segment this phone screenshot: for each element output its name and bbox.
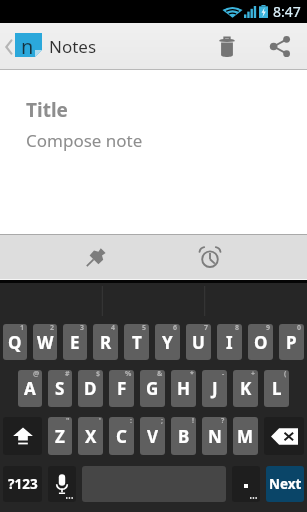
button[interactable]: H [171, 370, 196, 407]
button[interactable]: Y [155, 324, 180, 360]
staticText: O [254, 331, 268, 354]
staticText: * [190, 370, 194, 379]
staticText: X [85, 425, 97, 448]
staticText: $ [96, 370, 101, 379]
staticText: N [208, 425, 222, 448]
button[interactable]: U [186, 324, 211, 360]
button[interactable]: Next [266, 466, 304, 502]
staticText: Next [269, 475, 302, 493]
button[interactable]: L [264, 370, 289, 407]
staticText: 3 [80, 324, 85, 333]
staticText: @ [33, 370, 40, 379]
button[interactable]: S [48, 370, 72, 407]
button[interactable]: V [140, 417, 165, 455]
staticText: F [117, 377, 127, 400]
staticText: - [222, 370, 225, 379]
staticText: M [237, 425, 254, 448]
staticText: T [132, 331, 142, 354]
staticText: U [192, 331, 205, 354]
staticText: Title [26, 97, 68, 123]
staticText: Q [8, 331, 22, 354]
staticText: C [116, 425, 127, 448]
staticText: + [251, 370, 256, 379]
staticText: Compose note [26, 129, 143, 152]
staticText: 9 [266, 324, 271, 333]
button[interactable]: Voice input [48, 466, 76, 502]
button[interactable]: R [93, 324, 118, 360]
button[interactable]: B [171, 417, 196, 455]
staticText: ? [221, 417, 225, 426]
button[interactable]: Q [3, 324, 27, 360]
staticText: B [178, 425, 190, 448]
staticText: 0 [297, 324, 302, 333]
button[interactable]: G [140, 370, 165, 407]
button[interactable]: D [78, 370, 103, 407]
button[interactable]: I [217, 324, 242, 360]
staticText: ! [192, 417, 194, 426]
staticText: V [147, 425, 159, 448]
staticText: 6 [173, 324, 178, 333]
staticText: Notes [49, 35, 97, 58]
button[interactable]: E [63, 324, 87, 360]
staticText: ' [99, 417, 101, 426]
button[interactable]: T [124, 324, 149, 360]
staticText: % [125, 370, 132, 379]
button[interactable]: Shift [3, 417, 42, 455]
staticText: A [24, 377, 36, 400]
staticText: : [130, 417, 132, 426]
staticText: D [84, 377, 97, 400]
staticText: 4 [111, 324, 116, 333]
button[interactable]: C [109, 417, 134, 455]
staticText: G [146, 377, 159, 400]
button[interactable]: Set reminder [190, 237, 230, 277]
button[interactable] [232, 466, 260, 502]
staticText: 8:47 [273, 2, 301, 21]
staticText: Y [162, 331, 173, 354]
button[interactable]: F [109, 370, 134, 407]
staticText: J [212, 377, 218, 400]
staticText: ; [161, 417, 163, 426]
staticText: E [70, 331, 80, 354]
button[interactable]: ?123 [3, 466, 42, 502]
staticText: & [157, 370, 163, 379]
button[interactable]: Z [48, 417, 72, 455]
button[interactable]: Pin note [76, 237, 116, 277]
staticText: 1 [20, 324, 25, 333]
staticText: S [55, 377, 65, 400]
button[interactable]: K [233, 370, 258, 407]
button[interactable]: A [18, 370, 42, 407]
button[interactable]: P [279, 324, 304, 360]
staticText: 2 [50, 324, 55, 333]
staticText: R [100, 331, 112, 354]
staticText: # [65, 370, 70, 379]
staticText: n [21, 33, 34, 57]
staticText: I [226, 331, 233, 354]
button[interactable]: Backspace [264, 417, 304, 455]
staticText: H [177, 377, 191, 400]
button[interactable]: J [202, 370, 227, 407]
staticText: L [272, 377, 282, 400]
staticText: " [66, 417, 70, 426]
staticText: Z [55, 425, 65, 448]
staticText: 8 [235, 324, 240, 333]
staticText: 7 [204, 324, 209, 333]
button[interactable]: Delete note [205, 23, 256, 70]
button[interactable]: M [233, 417, 258, 455]
button[interactable]: X [78, 417, 103, 455]
staticText: ( [284, 370, 287, 379]
staticText: P [286, 331, 297, 354]
staticText: 5 [142, 324, 147, 333]
button[interactable]: W [33, 324, 57, 360]
button[interactable]: O [248, 324, 273, 360]
button[interactable]: Share note [256, 23, 307, 70]
button[interactable]: n [0, 23, 105, 70]
staticText: W [37, 331, 54, 354]
staticText: K [240, 377, 252, 400]
staticText: ?123 [8, 475, 38, 493]
button[interactable]: N [202, 417, 227, 455]
